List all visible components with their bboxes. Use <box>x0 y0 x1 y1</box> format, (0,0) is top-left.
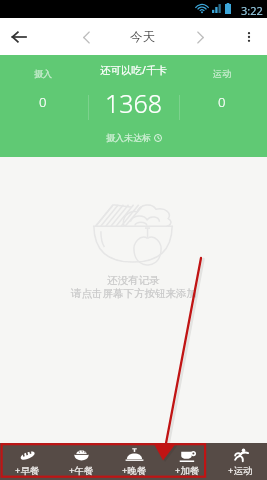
staticText: +晚餐 <box>122 464 147 477</box>
button[interactable]: More options <box>231 18 267 55</box>
staticText: +午餐 <box>69 464 94 477</box>
staticText: 摄入未达标 <box>106 132 151 143</box>
button[interactable]: +早餐 <box>0 443 54 480</box>
staticText: 摄入 <box>34 68 52 79</box>
staticText: 还没有记录 <box>107 274 160 287</box>
button[interactable]: +午餐 <box>54 443 108 480</box>
staticText: 今天 <box>130 29 155 45</box>
staticText: 运动 <box>213 68 231 79</box>
staticText: 0 <box>218 93 226 111</box>
button[interactable]: 今天 <box>120 18 165 55</box>
button[interactable]: +运动 <box>214 443 267 480</box>
button[interactable]: 摄入未达标 <box>106 132 162 143</box>
staticText: 3:22 <box>241 3 263 18</box>
staticText: +运动 <box>228 464 253 477</box>
staticText: 请点击屏幕下方按钮来添加 <box>71 287 197 300</box>
staticText: +早餐 <box>15 464 40 477</box>
staticText: 还可以吃/千卡 <box>100 63 167 77</box>
staticText: +加餐 <box>175 464 200 477</box>
button[interactable]: Next day <box>186 23 214 51</box>
staticText: 1368 <box>105 86 163 120</box>
button[interactable]: Previous day <box>72 23 100 51</box>
button[interactable]: Back <box>0 18 38 55</box>
staticText: 0 <box>39 93 47 111</box>
button[interactable]: +加餐 <box>161 443 214 480</box>
button[interactable]: +晚餐 <box>108 443 161 480</box>
